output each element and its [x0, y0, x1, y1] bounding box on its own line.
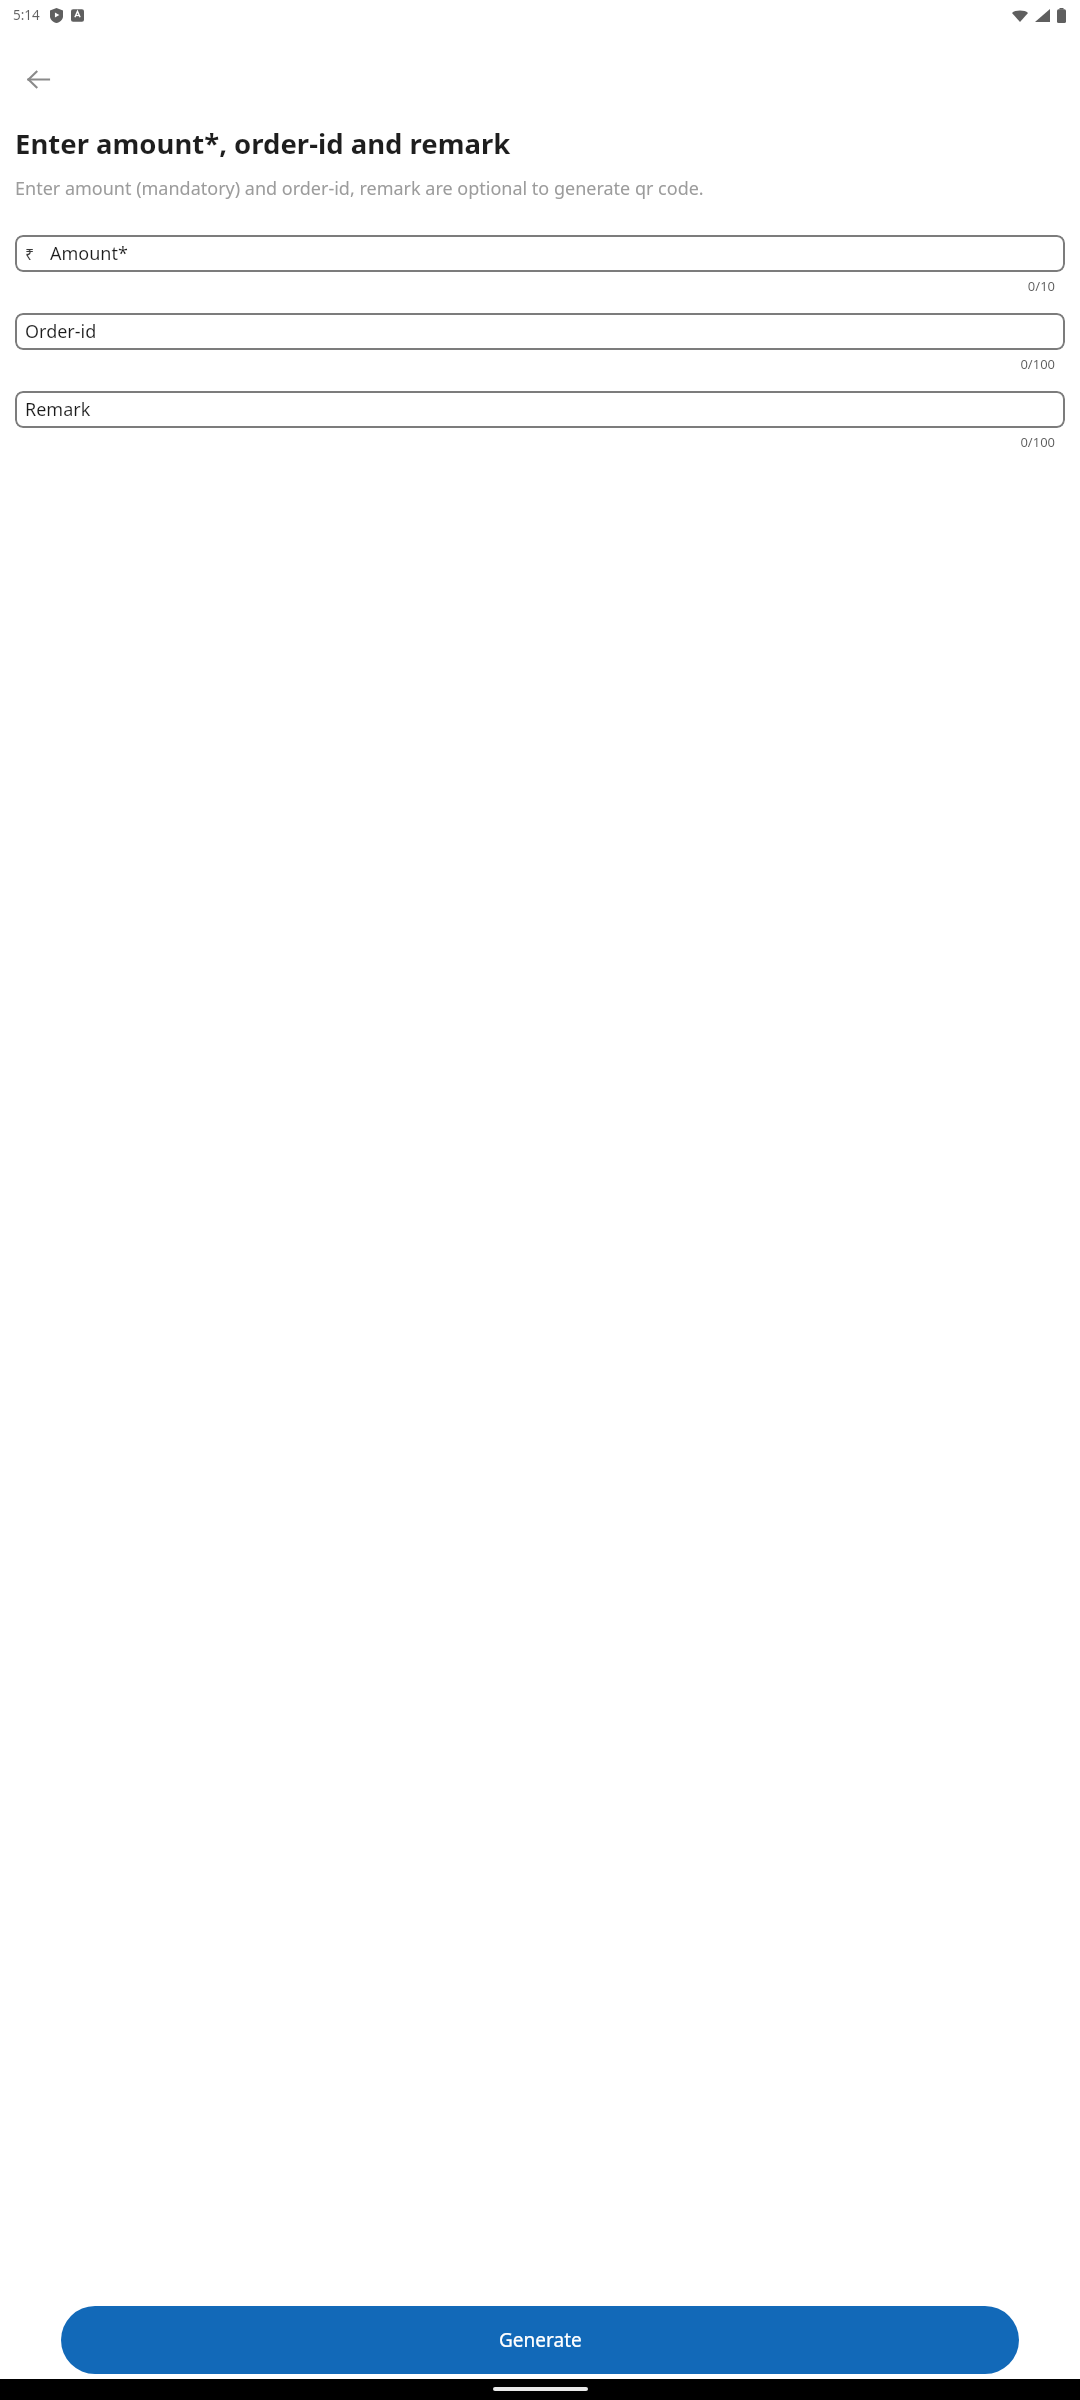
- staticText: Order-id: [25, 319, 97, 344]
- staticText: 0/100: [15, 355, 1055, 373]
- staticText: ₹: [25, 243, 35, 265]
- staticText: 5:14: [13, 6, 40, 24]
- staticText: Amount*: [50, 241, 128, 266]
- button[interactable]: Order-id: [15, 313, 1065, 350]
- staticText: Enter amount*, order-id and remark: [15, 125, 511, 162]
- staticText: Generate: [499, 2327, 582, 2353]
- button[interactable]: Remark: [15, 391, 1065, 428]
- staticText: 0/100: [15, 433, 1055, 451]
- button[interactable]: Back: [14, 55, 62, 103]
- staticText: Remark: [25, 397, 91, 422]
- staticText: Enter amount (mandatory) and order-id, r…: [15, 176, 704, 201]
- button[interactable]: ₹: [15, 235, 1065, 272]
- staticText: 0/10: [15, 277, 1055, 295]
- button[interactable]: Generate: [61, 2306, 1019, 2374]
